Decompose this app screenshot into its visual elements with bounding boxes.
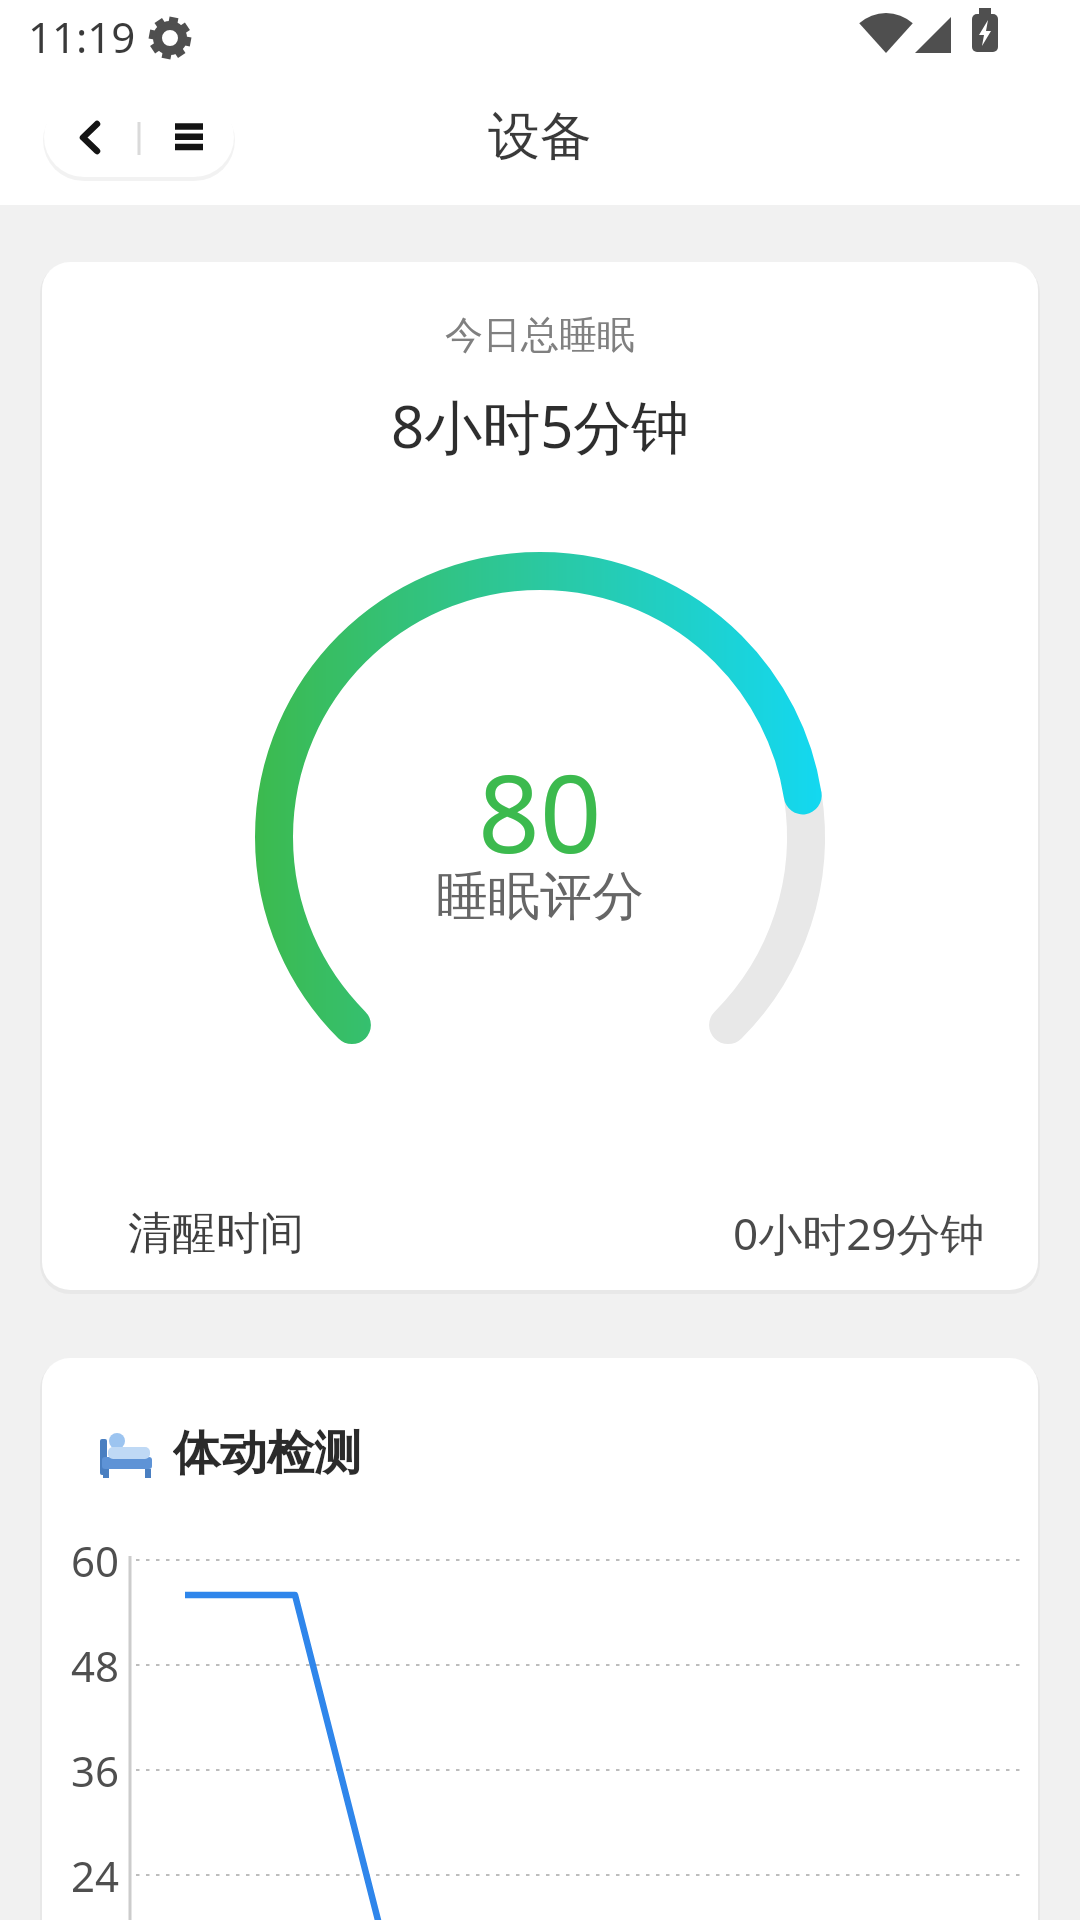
staticText: 体动检测	[173, 1424, 361, 1482]
staticText: 0小时29分钟	[733, 1203, 985, 1263]
staticText: 48	[71, 1637, 120, 1694]
staticText: 今日总睡眠	[445, 311, 635, 359]
button[interactable]: 体动检测	[42, 1358, 1038, 1920]
staticText: 80	[478, 738, 602, 885]
staticText: 24	[71, 1847, 120, 1904]
staticText: 11:19	[28, 8, 136, 64]
staticText: 36	[71, 1742, 120, 1799]
staticText: 睡眠评分	[436, 864, 644, 930]
staticText: 清醒时间	[128, 1206, 304, 1261]
button[interactable]: 今日总睡眠	[42, 262, 1038, 1290]
staticText: 60	[71, 1532, 120, 1589]
staticText: 设备	[488, 104, 592, 170]
button[interactable]	[44, 97, 234, 177]
staticText: 8小时5分钟	[391, 386, 690, 465]
